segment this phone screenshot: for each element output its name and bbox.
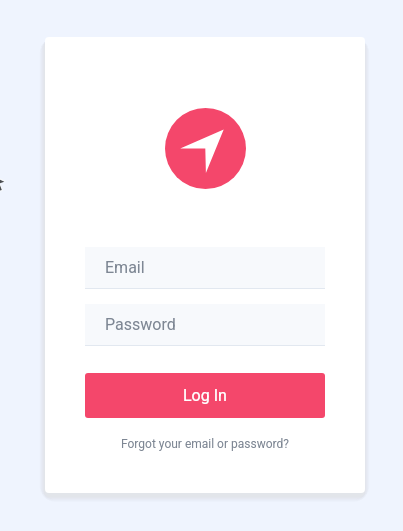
staticText: Password: [105, 315, 176, 334]
button[interactable]: Password: [85, 304, 325, 346]
button[interactable]: Forgot your email or password?: [113, 434, 297, 454]
other: App logo: [165, 108, 246, 189]
button[interactable]: Email: [85, 247, 325, 289]
staticText: Forgot your email or password?: [121, 437, 289, 451]
staticText: Email: [105, 258, 145, 277]
button[interactable]: Log In: [85, 373, 325, 418]
staticText: Log In: [183, 386, 227, 405]
